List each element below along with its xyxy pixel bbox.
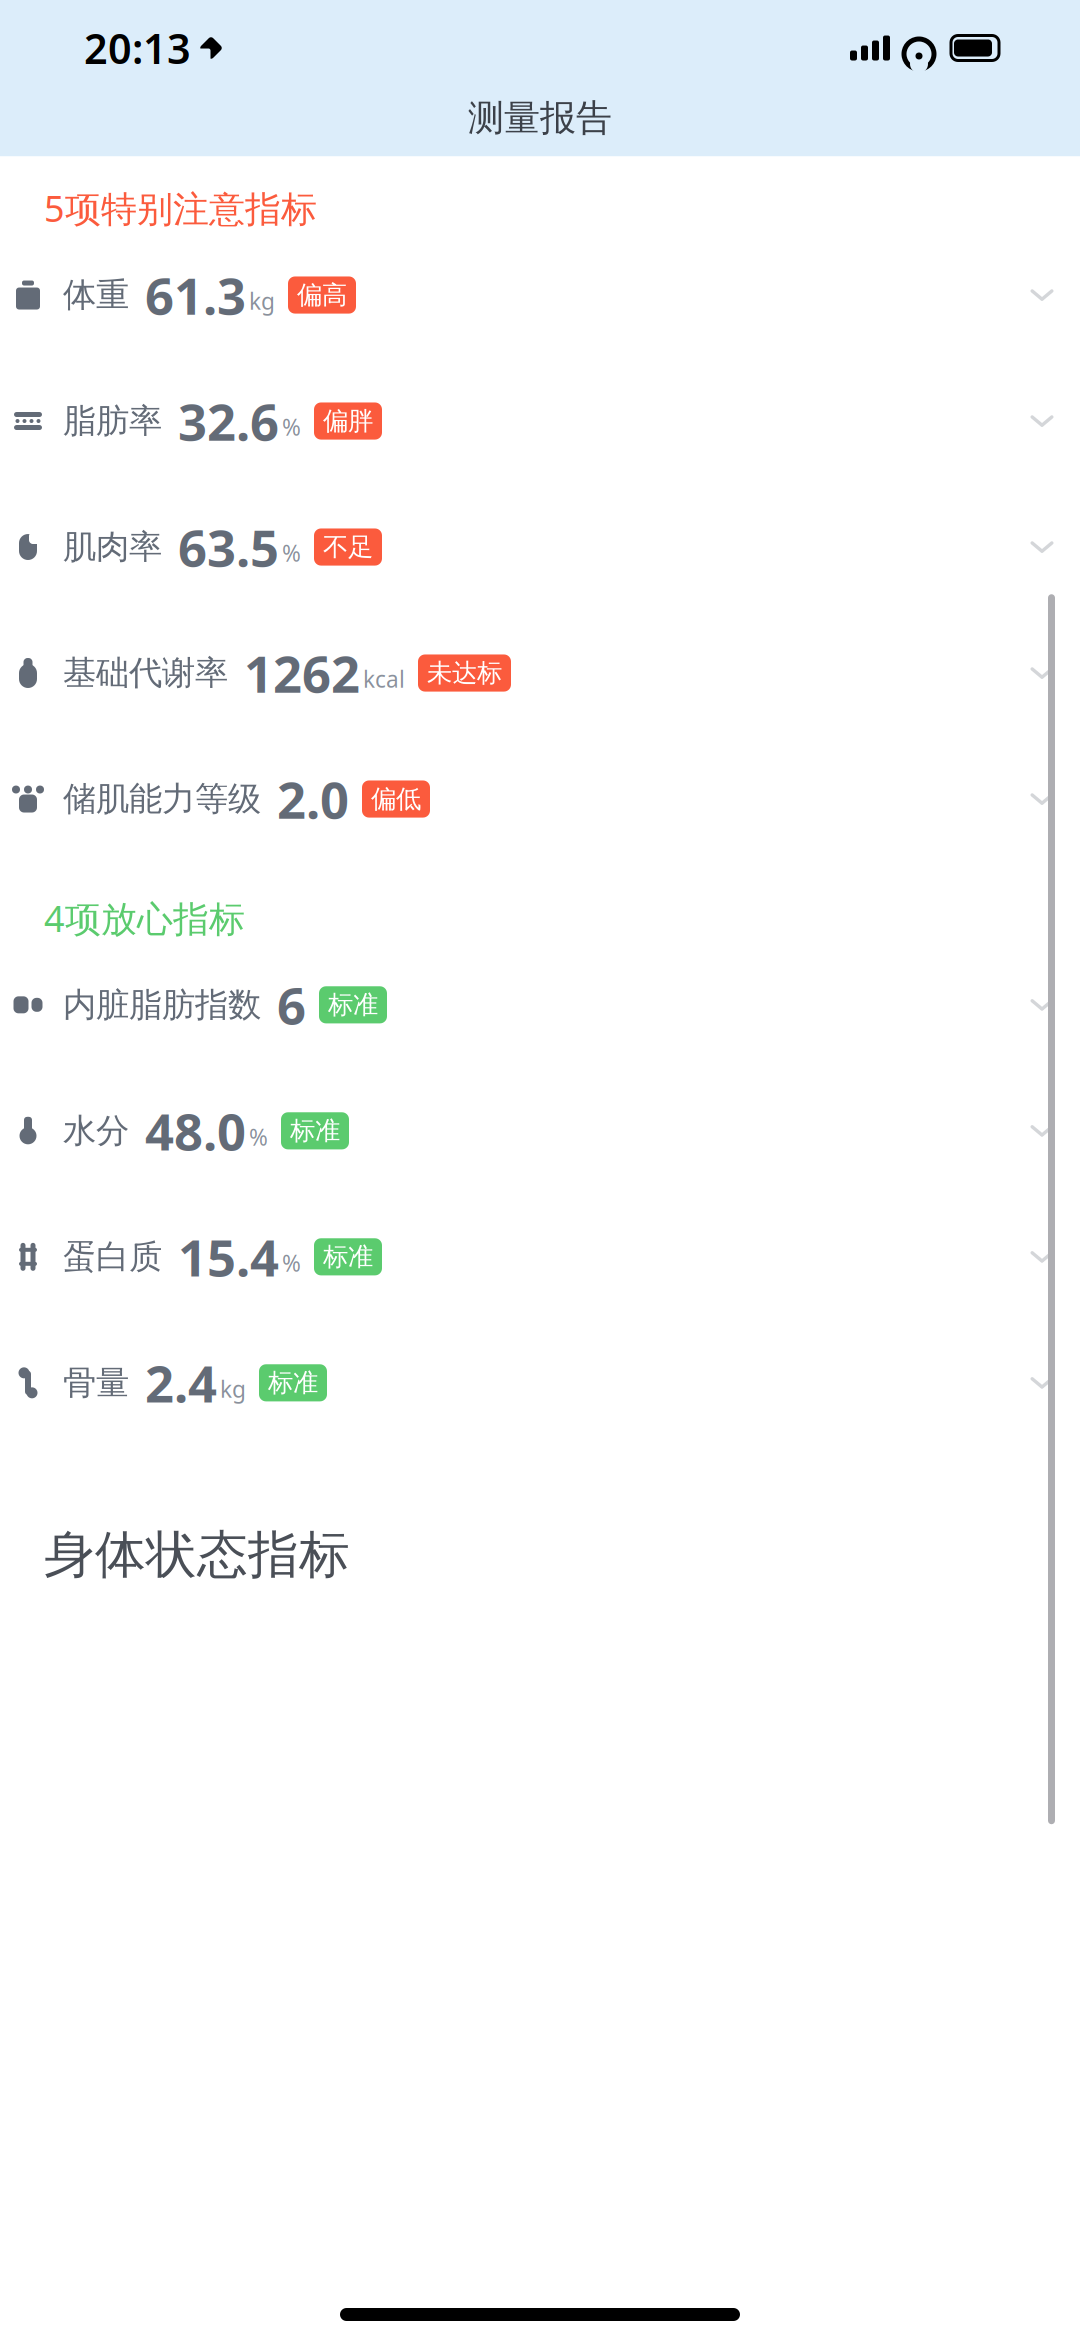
staticText: 储肌能力等级 [63, 779, 261, 819]
staticText: 未达标 [427, 657, 502, 689]
staticText: 脂肪率 [63, 401, 162, 441]
staticText: 身体状态指标 [44, 1524, 350, 1586]
staticText: kcal [363, 664, 405, 694]
staticText: 5项特别注意指标 [44, 184, 317, 232]
staticText: 2.0 [277, 765, 349, 833]
button[interactable]: 基础代谢率 [0, 610, 1080, 736]
staticText: 偏高 [297, 279, 347, 311]
button[interactable]: 肌肉率 [0, 484, 1080, 610]
staticText: 偏低 [371, 783, 421, 815]
staticText: 15.4 [178, 1223, 279, 1290]
staticText: 63.5 [178, 513, 279, 581]
button[interactable]: 体重 [0, 232, 1080, 358]
button[interactable]: 脂肪率 [0, 358, 1080, 484]
staticText: 4项放心指标 [44, 894, 245, 942]
staticText: kg [220, 1374, 246, 1404]
button[interactable]: 储肌能力等级 [0, 736, 1080, 862]
staticText: 蛋白质 [63, 1236, 162, 1277]
staticText: 内脏脂肪指数 [63, 984, 261, 1025]
button[interactable]: 骨量 [0, 1320, 1080, 1446]
staticText: 测量报告 [468, 96, 612, 140]
staticText: 肌肉率 [63, 527, 162, 567]
staticText: 32.6 [178, 387, 279, 455]
staticText: 标准 [323, 1241, 373, 1272]
staticText: 基础代谢率 [63, 653, 228, 693]
staticText: 标准 [328, 989, 378, 1020]
staticText: % [282, 1248, 301, 1278]
staticText: 不足 [323, 531, 373, 563]
staticText: % [249, 1122, 268, 1152]
staticText: 1262 [244, 639, 360, 707]
staticText: % [282, 538, 301, 568]
staticText: 48.0 [145, 1097, 246, 1164]
staticText: % [282, 412, 301, 442]
button[interactable]: 水分 [0, 1068, 1080, 1194]
button[interactable]: 蛋白质 [0, 1194, 1080, 1320]
staticText: 6 [277, 971, 306, 1038]
staticText: 骨量 [63, 1362, 129, 1403]
staticText: 水分 [63, 1110, 129, 1151]
staticText: 20:13 [84, 21, 191, 75]
staticText: 标准 [290, 1115, 340, 1146]
staticText: 偏胖 [323, 405, 373, 437]
staticText: 61.3 [145, 261, 246, 329]
button[interactable]: 内脏脂肪指数 [0, 942, 1080, 1068]
staticText: 体重 [63, 275, 129, 315]
staticText: 2.4 [145, 1349, 217, 1416]
staticText: 标准 [268, 1367, 318, 1398]
staticText: kg [249, 286, 275, 316]
